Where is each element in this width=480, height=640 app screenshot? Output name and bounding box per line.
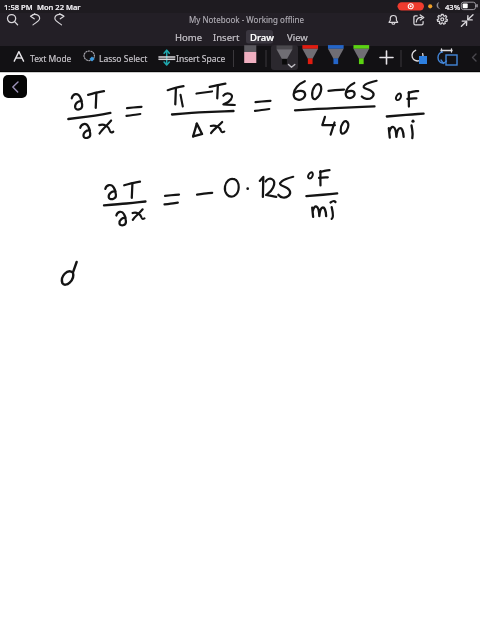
staticText: Insert Space — [176, 53, 226, 65]
button[interactable]: Draw — [247, 30, 273, 44]
button[interactable]: Notifications — [386, 12, 402, 28]
button[interactable]: Insert Space — [156, 46, 230, 71]
button[interactable]: Insert — [211, 30, 241, 44]
staticText: Home — [175, 31, 203, 44]
staticText: View — [287, 31, 308, 44]
button[interactable]: Eraser — [240, 46, 264, 71]
button[interactable]: Share — [412, 12, 428, 28]
button[interactable]: Lasso Select — [80, 46, 150, 71]
staticText: 43% — [445, 2, 461, 12]
button[interactable]: Undo — [28, 13, 45, 30]
button[interactable]: Redo — [52, 13, 69, 30]
staticText: Mon 22 Mar — [37, 2, 81, 12]
button[interactable]: Pen — [271, 45, 299, 70]
button[interactable]: Add pen — [376, 46, 398, 71]
staticText: Insert — [213, 31, 240, 44]
button[interactable]: View — [284, 30, 310, 44]
button[interactable]: Home — [173, 30, 201, 44]
staticText: Lasso Select — [99, 53, 148, 65]
button[interactable]: Search — [4, 13, 21, 30]
button[interactable]: Settings — [435, 12, 451, 28]
button[interactable]: Green marker — [350, 45, 372, 70]
button[interactable]: Back — [3, 75, 27, 98]
staticText: Text Mode — [30, 53, 72, 65]
staticText: 1:58 PM — [4, 2, 33, 12]
staticText: Draw — [250, 31, 274, 44]
button[interactable]: Collapse ribbon — [459, 12, 475, 28]
button[interactable]: Blue marker — [325, 45, 347, 70]
button[interactable]: Lasso to shape — [410, 46, 432, 71]
staticText: My Notebook - Working offline — [189, 14, 304, 25]
button[interactable]: Red marker — [300, 45, 322, 70]
button[interactable]: Text Mode — [10, 46, 74, 71]
button[interactable]: Ink to shape — [438, 46, 462, 71]
